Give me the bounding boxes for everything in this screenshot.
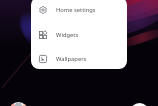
staticText: Widgets <box>56 31 79 39</box>
button[interactable]: Home settings <box>31 0 127 22</box>
button[interactable]: Widgets <box>31 22 127 47</box>
button[interactable]: Wallpapers <box>31 46 127 69</box>
staticText: Home settings <box>56 6 96 14</box>
button[interactable]: App icon <box>130 103 149 106</box>
button[interactable]: Chrome <box>9 102 28 106</box>
staticText: Wallpapers <box>56 55 87 63</box>
